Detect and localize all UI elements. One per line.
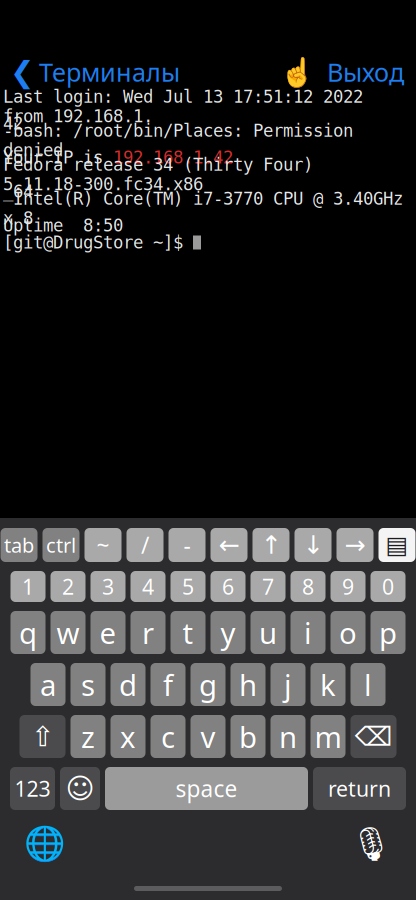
button[interactable]: 5 [170,571,205,602]
button[interactable]: ↑ [252,528,289,562]
button[interactable]: k [310,663,345,706]
staticText: j [284,665,292,704]
staticText: 🌐 [24,825,66,863]
staticText: 123 [14,774,50,803]
button[interactable]: return [313,767,406,810]
staticText: Your IP is [3,148,113,167]
button[interactable]: v [190,715,225,758]
button[interactable]: 8 [290,571,325,602]
button[interactable]: ↓ [294,528,331,562]
button[interactable]: tab [0,528,37,562]
button[interactable]: ~ [84,528,121,562]
staticText: 5 [182,572,194,601]
staticText: 🎙 [350,825,392,863]
staticText: 6 [222,572,234,601]
button[interactable]: r [130,611,165,654]
button[interactable]: l [350,663,385,706]
button[interactable]: t [170,611,205,654]
staticText: [git@DrugStore ~]$ [3,233,193,252]
button[interactable]: space [105,767,308,810]
button[interactable]: 7 [250,571,285,602]
button[interactable]: ctrl [42,528,79,562]
staticText: Last login: Wed Jul 13 17:51:12 2022 fro… [3,87,363,126]
staticText: ctrl [46,532,76,558]
button[interactable]: w [50,611,85,654]
button[interactable]: y [210,611,245,654]
button[interactable]: m [310,715,345,758]
staticText: ⌫ [354,721,392,752]
staticText: ☝ [279,56,314,88]
staticText: ☺ [65,773,94,804]
staticText: u [259,613,277,652]
staticText: ⇧ [31,721,54,752]
button[interactable]: x [110,715,145,758]
button[interactable]: z [70,715,105,758]
staticText: -bash: /root/bin/Places: Permission deni… [3,121,353,160]
button[interactable]: → [336,528,373,562]
button[interactable]: / [126,528,163,562]
button[interactable]: Next keyboard [22,821,68,867]
button[interactable]: 123 [10,767,55,810]
button[interactable]: e [90,611,125,654]
button[interactable]: b [230,715,265,758]
staticText: Выход [327,55,404,89]
button[interactable]: d [110,663,145,706]
staticText: _64 [3,182,33,201]
staticText: 192.168.1.42 [113,148,233,167]
staticText: Fedora release 34 (Thirty Four) 5.11.18-… [3,155,313,194]
button[interactable]: 3 [90,571,125,602]
staticText: r [142,613,154,652]
button[interactable]: Pointer mode [279,50,315,94]
staticText: l [364,665,372,704]
button[interactable]: c [150,715,185,758]
staticText: s [81,665,95,704]
button[interactable]: 9 [330,571,365,602]
button[interactable]: ⇧ [19,715,65,758]
staticText: b [239,717,257,756]
button[interactable]: q [10,611,45,654]
button[interactable]: ▤ [378,528,415,562]
staticText: q [19,613,37,652]
staticText: 2 [62,572,74,601]
staticText: a [40,665,56,704]
staticText: 8 [302,572,314,601]
staticText: space [175,773,237,803]
staticText: ↑ [260,531,281,559]
button[interactable]: Dictation [348,821,394,867]
staticText: 4 [142,572,154,601]
staticText: → [344,531,365,559]
button[interactable]: ☺ [60,767,100,810]
button[interactable]: ← [210,528,247,562]
button[interactable]: p [370,611,405,654]
button[interactable]: n [270,715,305,758]
staticText: i [304,613,312,652]
button[interactable]: h [230,663,265,706]
button[interactable]: 2 [50,571,85,602]
button[interactable]: g [190,663,225,706]
button[interactable]: a [30,663,65,706]
staticText: m [314,717,341,756]
staticText: x [120,717,136,756]
staticText: v [200,717,215,756]
button[interactable]: f [150,663,185,706]
staticText: Uptime 8:50 [3,216,123,235]
button[interactable]: 0 [370,571,405,602]
staticText: 0 [382,572,394,601]
button[interactable]: - [168,528,205,562]
button[interactable]: ❮ [0,50,188,94]
button[interactable]: o [330,611,365,654]
staticText: / [141,530,149,560]
staticText: ▤ [385,531,408,559]
button[interactable]: j [270,663,305,706]
button[interactable]: s [70,663,105,706]
button[interactable]: ⌫ [350,715,396,758]
button[interactable]: Выход [315,50,416,94]
button[interactable]: 1 [10,571,45,602]
staticText: - [183,530,190,560]
button[interactable]: i [290,611,325,654]
staticText: t [182,613,193,652]
button[interactable]: u [250,611,285,654]
staticText: ~ [96,530,109,560]
button[interactable]: 6 [210,571,245,602]
button[interactable]: 4 [130,571,165,602]
